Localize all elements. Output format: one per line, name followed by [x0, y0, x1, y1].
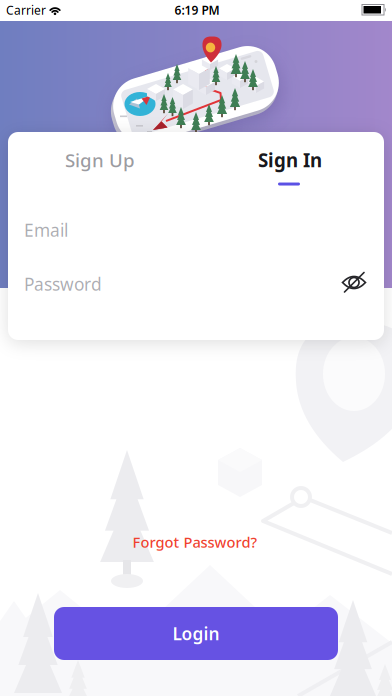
staticText: Login	[172, 622, 219, 645]
staticText: Email	[24, 218, 68, 241]
staticText: Forgot Password?	[132, 532, 257, 552]
button[interactable]: Sign In	[210, 138, 370, 182]
staticText: Carrier	[6, 2, 46, 18]
staticText: 6:19 PM	[174, 2, 219, 18]
button[interactable]: Show password	[334, 264, 374, 300]
staticText: Sign In	[258, 148, 322, 172]
button[interactable]: Login	[54, 607, 338, 660]
staticText: Sign Up	[65, 148, 135, 172]
staticText: Password	[24, 272, 102, 295]
button[interactable]: Sign Up	[20, 138, 180, 182]
button[interactable]: Forgot Password?	[105, 527, 285, 557]
button[interactable]: Email	[24, 210, 368, 250]
button[interactable]: Password	[24, 264, 324, 304]
